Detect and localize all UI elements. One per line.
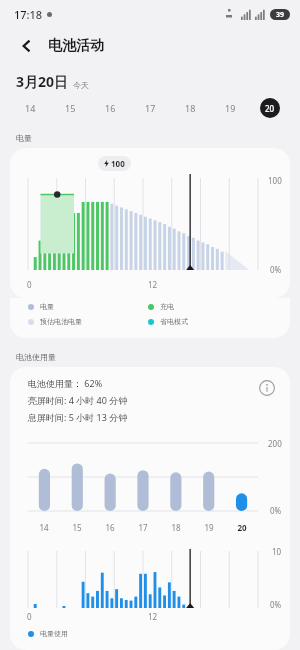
staticText: 14 [39, 522, 49, 533]
button[interactable]: 18 [159, 522, 192, 533]
staticText: 电量 [40, 302, 54, 311]
staticText: 18 [185, 102, 196, 114]
staticText: 100 [268, 175, 282, 186]
button[interactable]: 16 [90, 91, 130, 125]
staticText: 亮屏时间: 4 小时 40 分钟 [28, 394, 128, 406]
staticText: 0 [27, 279, 32, 290]
staticText: 0% [270, 505, 282, 516]
button[interactable]: Back [12, 31, 42, 61]
staticText: 电池活动 [48, 37, 104, 55]
staticText: 电池使用量： 62% [28, 377, 103, 389]
staticText: 14 [25, 102, 36, 114]
staticText: 3月20日 [16, 72, 69, 91]
staticText: 39 [276, 10, 285, 20]
button[interactable]: 15 [50, 91, 90, 125]
staticText: 17:18 [14, 7, 43, 22]
button[interactable]: 14 [10, 91, 50, 125]
staticText: 200 [268, 438, 282, 449]
staticText: 电池使用量 [16, 352, 56, 362]
staticText: 0 [27, 611, 32, 622]
staticText: 16 [105, 102, 116, 114]
staticText: 16 [105, 522, 115, 533]
staticText: 充电 [160, 302, 174, 311]
staticText: 100 [111, 158, 125, 169]
staticText: 0% [270, 599, 282, 610]
staticText: 17 [138, 522, 148, 533]
button[interactable]: 19 [210, 91, 250, 125]
staticText: 19 [204, 522, 214, 533]
staticText: 10 [272, 546, 282, 557]
staticText: 电量使用 [40, 629, 68, 638]
staticText: 12 [148, 279, 158, 290]
button[interactable]: 16 [93, 522, 126, 533]
button[interactable]: 17 [126, 522, 159, 533]
button[interactable]: 信息 [256, 377, 278, 399]
button[interactable]: 19 [192, 522, 225, 533]
staticText: 0% [270, 264, 282, 275]
staticText: 17 [145, 102, 156, 114]
staticText: 15 [65, 102, 76, 114]
staticText: 预估电池电量 [40, 317, 82, 326]
staticText: 今天 [73, 80, 89, 90]
staticText: 20 [237, 522, 247, 533]
button[interactable]: 15 [60, 522, 93, 533]
staticText: 息屏时间: 5 小时 13 分钟 [28, 411, 128, 423]
staticText: 省电模式 [160, 317, 188, 326]
button[interactable]: 18 [170, 91, 210, 125]
button[interactable]: 17 [130, 91, 170, 125]
staticText: 19 [225, 102, 236, 114]
staticText: 18 [171, 522, 181, 533]
button[interactable]: 20 [225, 522, 258, 533]
staticText: 15 [72, 522, 82, 533]
staticText: 电量 [16, 133, 32, 143]
button[interactable]: 14 [28, 522, 60, 533]
button[interactable]: 20 [250, 91, 290, 125]
staticText: 20 [265, 103, 275, 114]
staticText: 12 [148, 611, 158, 622]
